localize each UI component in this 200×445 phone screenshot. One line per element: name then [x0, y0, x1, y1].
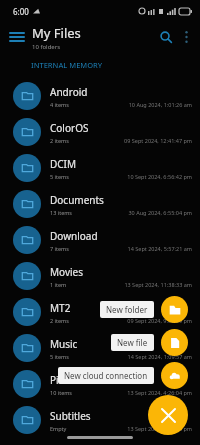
button[interactable]: Pictures	[0, 366, 200, 402]
button[interactable]: New file	[111, 329, 188, 356]
staticText: Movies	[50, 265, 84, 279]
button[interactable]: ColorOS	[0, 114, 200, 150]
staticText: 09 Sept 2024, 12:41:47 pm	[69, 137, 192, 144]
button[interactable]: Download	[0, 222, 200, 258]
staticText: 10 items	[50, 389, 73, 396]
staticText: 2 items	[50, 137, 69, 144]
staticText: Documents	[50, 193, 104, 207]
staticText: 7 items	[50, 245, 69, 252]
staticText: Android	[50, 85, 88, 99]
staticText: 2 items	[50, 317, 69, 324]
staticText: New cloud connection	[64, 370, 148, 381]
button[interactable]: Music	[0, 330, 200, 366]
staticText: 13 Sept 2024, 11:38:33 am	[67, 281, 192, 288]
staticText: 09 Sept 2024, 9:02:39 pm	[69, 317, 192, 324]
staticText: 14 Sept 2024, 1:09:57 am	[69, 353, 192, 360]
staticText: MT2	[50, 301, 71, 315]
staticText: 10 folders	[32, 43, 61, 51]
staticText: 13 Sept 2024, 1:10:03 pm	[67, 425, 192, 432]
staticText: New folder	[106, 304, 148, 315]
staticText: 1 item	[50, 281, 67, 288]
button[interactable]: New folder	[100, 296, 188, 323]
staticText: ColorOS	[50, 121, 89, 135]
staticText: 5 items	[50, 173, 69, 180]
staticText: 14 Sept 2024, 5:57:21 am	[69, 245, 192, 252]
staticText: 4 items	[50, 101, 69, 108]
staticText: 10 Sept 2024, 6:56:42 pm	[69, 173, 192, 180]
button[interactable]: New cloud connection	[58, 362, 188, 389]
staticText: Download	[50, 229, 98, 243]
button[interactable]: Subtitles	[0, 402, 200, 438]
staticText: 10 Aug 2024, 1:01:26 am	[69, 101, 192, 108]
staticText: Music	[50, 337, 78, 351]
button[interactable]: Close menu	[148, 395, 188, 435]
staticText: New file	[117, 337, 148, 348]
staticText: 6:00	[13, 6, 29, 17]
button[interactable]: Open navigation drawer	[5, 25, 29, 49]
button[interactable]: Movies	[0, 258, 200, 294]
staticText: 5 items	[50, 353, 69, 360]
button[interactable]: Documents	[0, 186, 200, 222]
button[interactable]: Android	[0, 78, 200, 114]
staticText: 30 Aug 2024, 6:55:04 pm	[73, 209, 192, 216]
staticText: 13 items	[50, 209, 73, 216]
staticText: Subtitles	[50, 409, 91, 423]
button[interactable]: DCIM	[0, 150, 200, 186]
staticText: Pictures	[50, 373, 88, 387]
staticText: My Files	[32, 24, 81, 42]
staticText: INTERNAL MEMORY	[31, 60, 103, 70]
staticText: 13 Sept 2024, 4:26:04 pm	[73, 389, 192, 396]
button[interactable]: More options	[175, 26, 197, 48]
staticText: Empty	[50, 425, 67, 432]
button[interactable]: MT2	[0, 294, 200, 330]
staticText: DCIM	[50, 157, 77, 171]
button[interactable]: Search	[154, 25, 178, 49]
